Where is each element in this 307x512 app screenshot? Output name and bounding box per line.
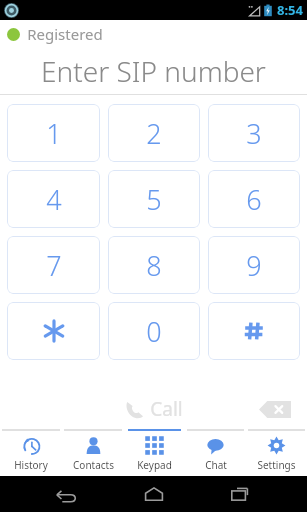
button[interactable]: Chat — [185, 429, 246, 476]
button[interactable]: Enter SIP number — [0, 48, 307, 94]
staticText: Enter SIP number — [41, 52, 266, 90]
button[interactable]: Back — [44, 476, 88, 512]
button[interactable]: 7 — [7, 236, 100, 294]
staticText: Keypad — [137, 458, 172, 472]
staticText: 6 — [246, 181, 262, 218]
staticText: 9 — [246, 247, 262, 284]
staticText: History — [14, 458, 48, 472]
button[interactable]: 6 — [208, 170, 300, 228]
staticText: Call — [150, 396, 183, 422]
button[interactable]: 2 — [108, 104, 200, 162]
button[interactable]: Pound — [208, 302, 300, 360]
button[interactable]: 5 — [108, 170, 200, 228]
staticText: 8 — [146, 247, 162, 284]
button[interactable]: 8 — [108, 236, 200, 294]
staticText: 5 — [146, 181, 162, 218]
button[interactable]: Star — [7, 302, 100, 360]
staticText: 8:54 — [277, 1, 303, 19]
staticText: Chat — [205, 458, 227, 472]
staticText: 3 — [246, 115, 262, 152]
staticText: 1 — [46, 115, 62, 152]
staticText: Settings — [257, 458, 296, 472]
staticText: 7 — [46, 247, 62, 284]
button[interactable]: 9 — [208, 236, 300, 294]
button[interactable]: Keypad — [124, 429, 185, 476]
staticText: 4 — [46, 181, 62, 218]
staticText: Contacts — [73, 458, 114, 472]
button[interactable]: Contacts — [62, 429, 124, 476]
button[interactable]: Recents — [219, 476, 263, 512]
staticText: 2 — [146, 115, 162, 152]
button[interactable]: 3 — [208, 104, 300, 162]
button[interactable]: History — [0, 429, 62, 476]
button[interactable]: 1 — [7, 104, 100, 162]
staticText: Registered — [27, 24, 103, 44]
button[interactable]: 4 — [7, 170, 100, 228]
button[interactable]: Settings — [246, 429, 307, 476]
button[interactable]: 0 — [108, 302, 200, 360]
staticText: 0 — [146, 313, 162, 350]
button[interactable]: Call — [125, 396, 183, 422]
button[interactable]: Backspace — [259, 401, 291, 418]
button[interactable]: Home — [132, 476, 176, 512]
